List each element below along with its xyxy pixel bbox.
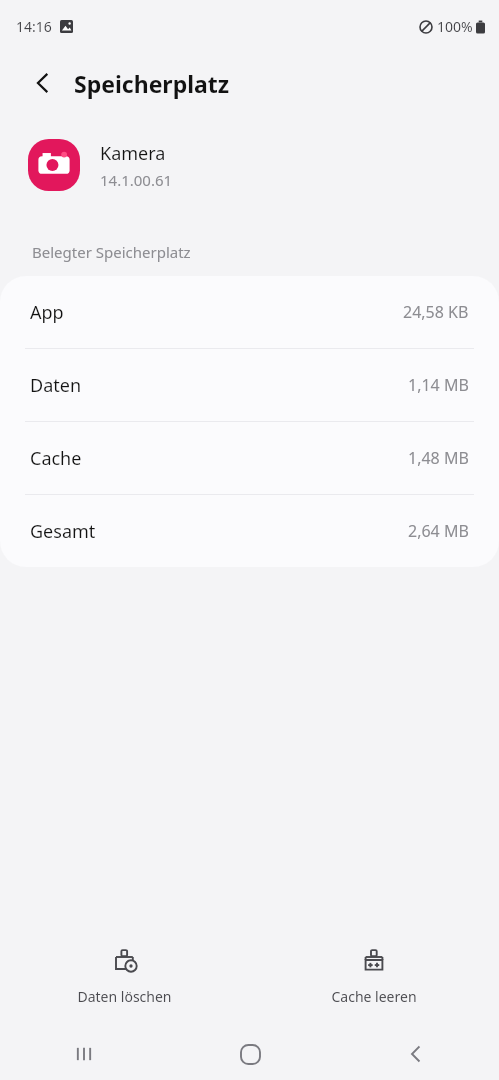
button[interactable]: Gesamt — [0, 495, 499, 567]
staticText: Cache leeren — [331, 987, 417, 1006]
button[interactable]: Daten — [0, 349, 499, 422]
staticText: 1,14 MB — [408, 374, 469, 396]
staticText: 24,58 KB — [403, 301, 469, 323]
staticText: 14.1.00.61 — [100, 170, 173, 190]
staticText: Kamera — [100, 141, 166, 166]
button[interactable]: Recent apps — [0, 1028, 167, 1080]
button[interactable]: Cache — [0, 422, 499, 495]
button[interactable]: App — [0, 276, 499, 349]
staticText: App — [30, 300, 64, 325]
staticText: 100% — [437, 17, 473, 36]
button[interactable]: Home — [167, 1028, 333, 1080]
button[interactable]: Daten löschen — [0, 942, 249, 1012]
button[interactable]: Back — [333, 1028, 499, 1080]
staticText: Daten löschen — [77, 987, 172, 1006]
staticText: 14:16 — [16, 17, 52, 36]
button[interactable]: Back — [26, 66, 60, 100]
staticText: Gesamt — [30, 519, 96, 544]
staticText: Belegter Speicherplatz — [32, 242, 191, 262]
button[interactable]: Cache leeren — [249, 942, 499, 1012]
staticText: Speicherplatz — [74, 68, 230, 99]
staticText: Daten — [30, 373, 82, 398]
staticText: 1,48 MB — [408, 447, 469, 469]
staticText: Cache — [30, 446, 82, 471]
staticText: 2,64 MB — [408, 520, 469, 542]
